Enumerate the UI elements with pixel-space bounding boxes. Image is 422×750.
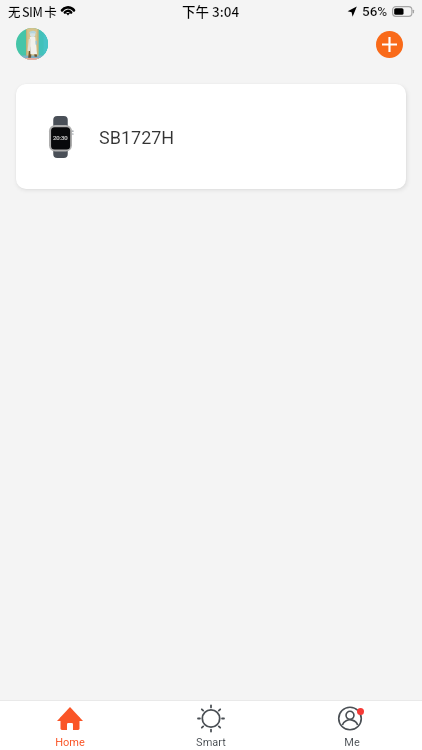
staticText: Home [55, 736, 85, 749]
button[interactable]: Home [0, 701, 140, 750]
button[interactable]: 20:30 [16, 84, 406, 189]
button[interactable]: Me [281, 701, 422, 750]
staticText: SB1727H [99, 127, 175, 148]
button[interactable]: Add device [376, 31, 403, 58]
staticText: 20:30 [53, 134, 68, 141]
button[interactable]: Profile [16, 28, 48, 60]
staticText: Me [344, 736, 360, 749]
button[interactable]: Smart [140, 701, 281, 750]
staticText: Smart [196, 736, 226, 749]
staticText: 无 SIM 卡 [8, 2, 57, 20]
staticText: 下午 3:04 [182, 1, 240, 21]
staticText: 56% [362, 3, 388, 19]
